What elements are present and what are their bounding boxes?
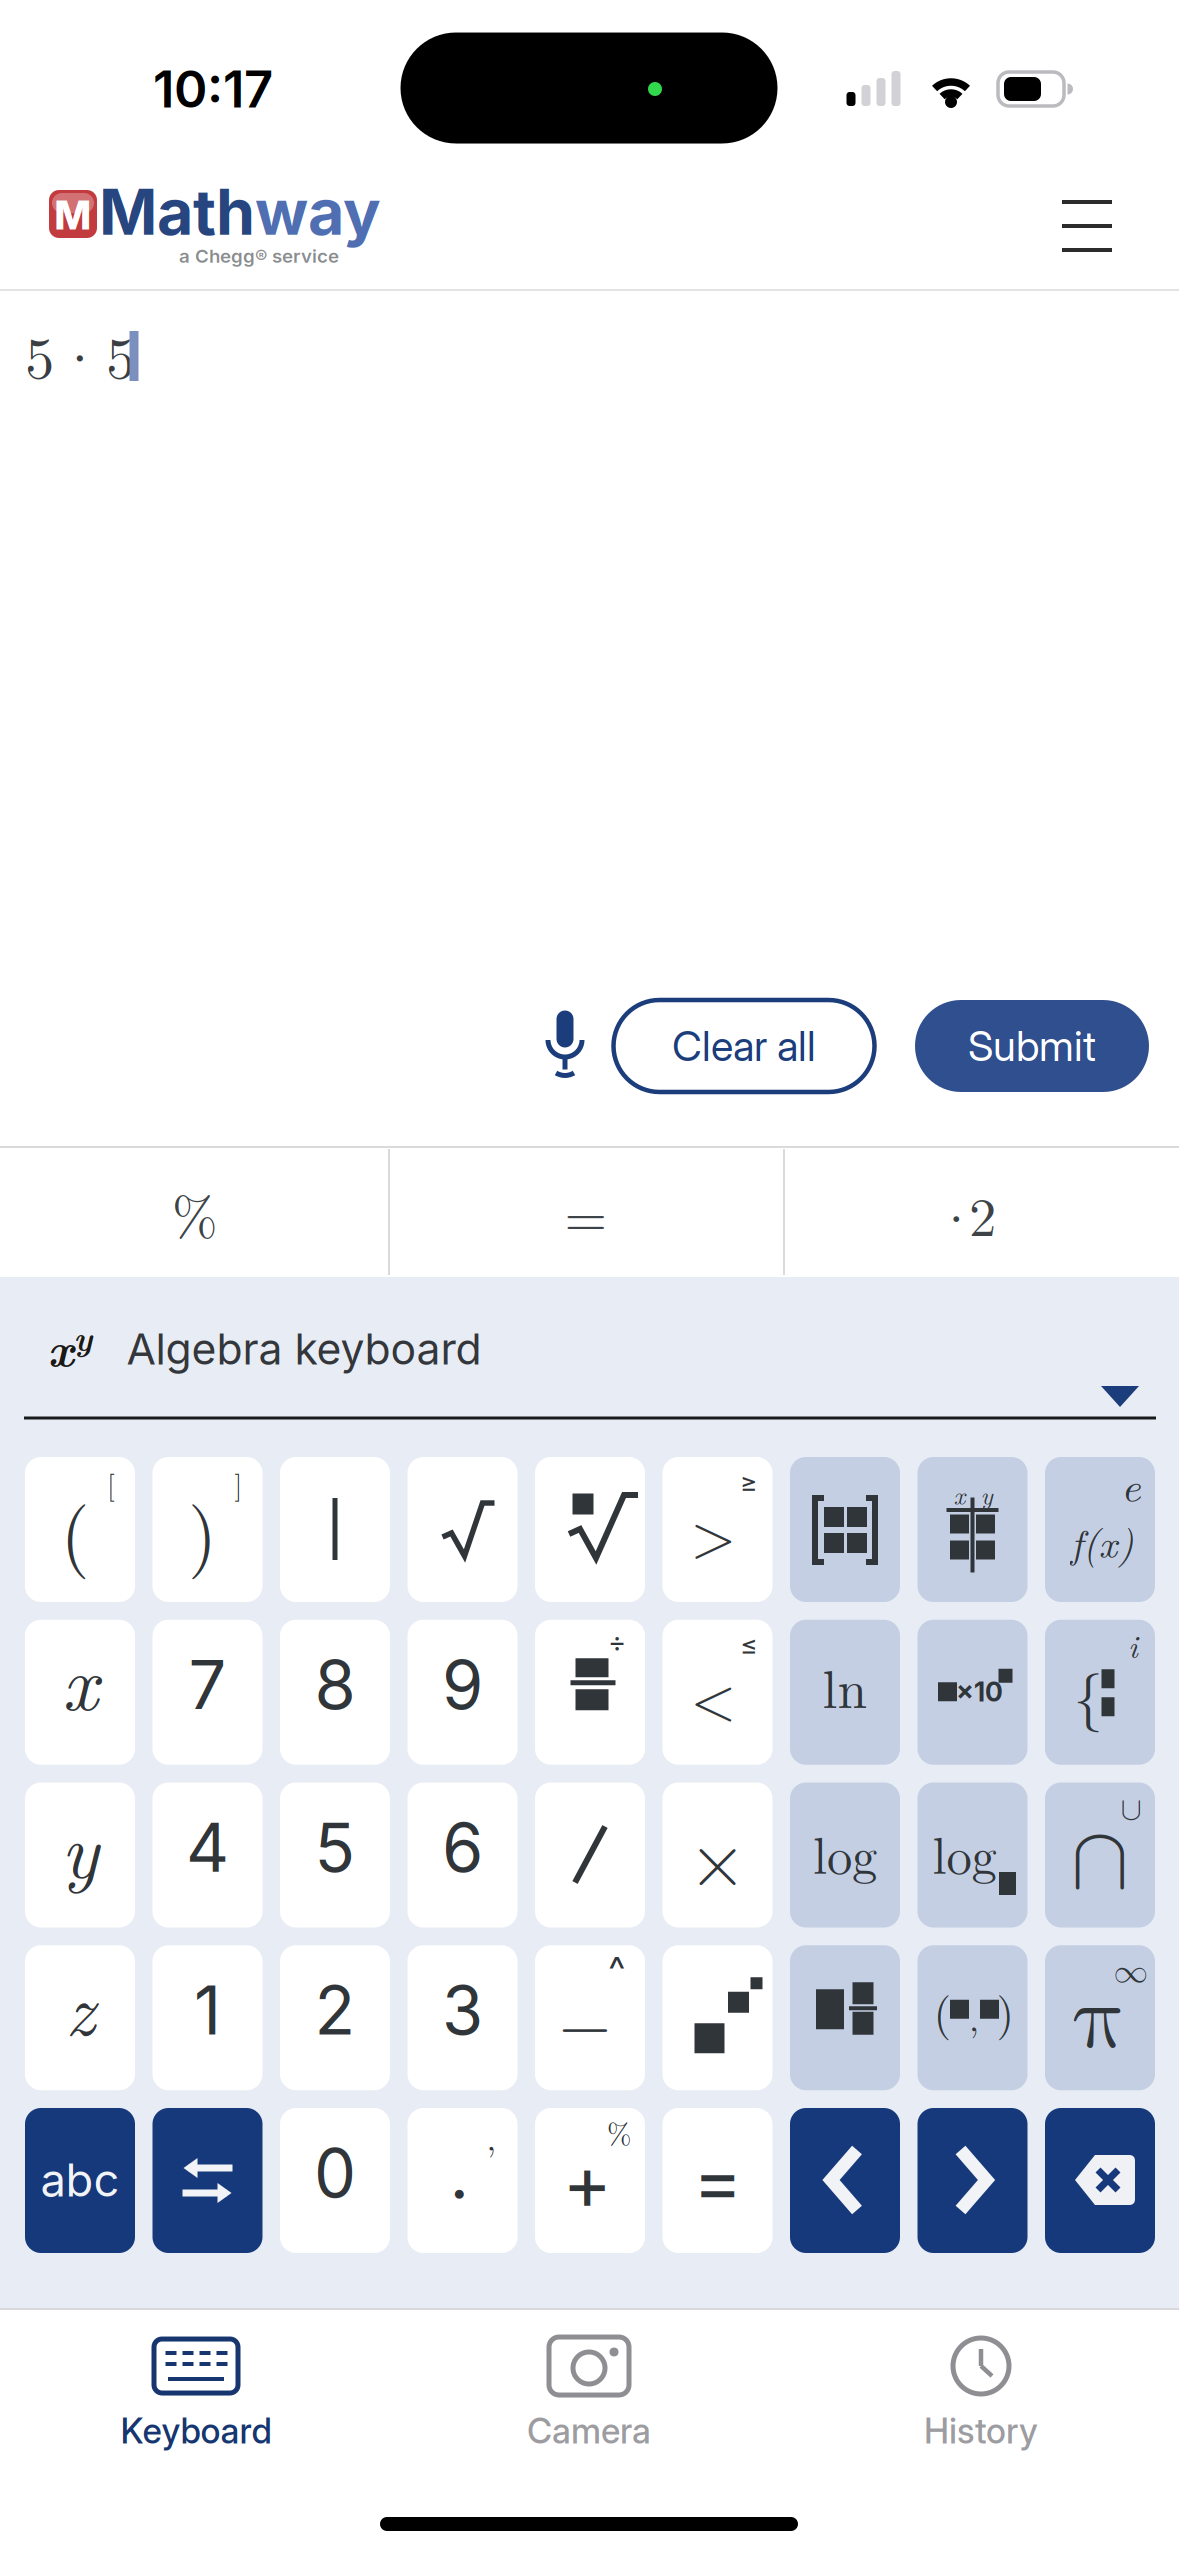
button[interactable]: 9 — [407, 1620, 517, 1765]
button[interactable]: Log base — [917, 1782, 1027, 1927]
staticText: 2 — [314, 1970, 355, 2051]
button[interactable]: Table — [917, 1457, 1027, 1602]
button[interactable]: Clear all — [613, 1000, 874, 1092]
button[interactable]: Mixed number — [790, 1945, 900, 2090]
button[interactable]: Piecewise — [1045, 1620, 1155, 1765]
button[interactable]: Nth root — [535, 1457, 645, 1602]
staticText: x — [62, 1623, 98, 1732]
staticText: + — [562, 2137, 611, 2227]
staticText: 10:17 — [153, 58, 273, 120]
staticText: . — [449, 2133, 469, 2215]
staticText: way — [255, 174, 381, 250]
button[interactable]: y — [25, 1782, 135, 1927]
button[interactable]: 5 — [280, 1782, 390, 1927]
button[interactable]: 8 — [280, 1620, 390, 1765]
staticText: , — [486, 2111, 496, 2160]
button[interactable]: Exponent — [662, 1945, 772, 2090]
button[interactable]: 3 — [407, 1945, 517, 2090]
staticText: Submit — [968, 1021, 1096, 1071]
staticText: 6 — [442, 1807, 483, 1888]
staticText: · — [935, 1176, 978, 1254]
staticText: % — [172, 1174, 218, 1252]
staticText: e — [1121, 1454, 1141, 1514]
button[interactable]: Pi — [1045, 1945, 1155, 2090]
button[interactable]: Dictate — [543, 1009, 587, 1079]
button[interactable]: Intersection — [1045, 1782, 1155, 1927]
button[interactable]: 0 — [280, 2108, 390, 2253]
button[interactable]: log — [790, 1782, 900, 1927]
button[interactable]: abc — [25, 2108, 135, 2253]
staticText: 9 — [442, 1644, 483, 1725]
button[interactable]: ( — [25, 1457, 135, 1602]
button[interactable]: Move left — [790, 2108, 900, 2253]
button[interactable]: Point — [917, 1945, 1027, 2090]
button[interactable]: Divide — [535, 1782, 645, 1927]
button[interactable]: 1 — [152, 1945, 262, 2090]
staticText: ∞ — [1113, 1955, 1148, 1990]
button[interactable]: Algebra keyboard — [0, 1277, 1179, 1419]
staticText: ) — [996, 1978, 1014, 2042]
staticText: 2 — [969, 1174, 996, 1252]
button[interactable]: Move right — [917, 2108, 1027, 2253]
button[interactable]: Absolute value — [280, 1457, 390, 1602]
staticText: ∪ — [1120, 1794, 1141, 1826]
button[interactable]: > — [662, 1457, 772, 1602]
staticText: y — [980, 1476, 992, 1512]
staticText: 5 — [314, 1807, 355, 1888]
staticText: Clear all — [672, 1021, 816, 1071]
button[interactable]: Menu — [1062, 200, 1112, 252]
staticText: ( — [60, 1476, 89, 1582]
staticText: { — [1073, 1651, 1102, 1734]
staticText: = — [693, 2135, 742, 2225]
staticText: x — [953, 1476, 965, 1512]
staticText: ÷ — [608, 1625, 626, 1659]
staticText: ^ — [608, 1948, 625, 1993]
button[interactable]: 4 — [152, 1782, 262, 1927]
staticText: y — [61, 1791, 99, 1900]
staticText: History — [924, 2410, 1038, 2452]
button[interactable]: < — [662, 1620, 772, 1765]
button[interactable]: Square root — [407, 1457, 517, 1602]
button[interactable]: 7 — [152, 1620, 262, 1765]
staticText: f(x) — [1070, 1513, 1133, 1569]
staticText: Math — [99, 174, 255, 250]
staticText: ( — [933, 1978, 951, 2042]
staticText: Camera — [527, 2410, 651, 2452]
staticText: ×10 — [956, 1676, 1003, 1708]
button[interactable]: . — [407, 2108, 517, 2253]
staticText: ] — [234, 1463, 242, 1503]
staticText: 4 — [186, 1807, 229, 1888]
button[interactable]: − — [535, 1945, 645, 2090]
button[interactable]: ln — [790, 1620, 900, 1765]
button[interactable]: z — [25, 1945, 135, 2090]
button[interactable]: ) — [152, 1457, 262, 1602]
staticText: Keyboard — [120, 2410, 271, 2452]
button[interactable]: = — [662, 2108, 772, 2253]
staticText: % — [607, 2111, 631, 2153]
button[interactable]: × — [662, 1782, 772, 1927]
button[interactable]: Scientific notation — [917, 1620, 1027, 1765]
button[interactable]: · — [784, 1149, 1177, 1277]
staticText: 7 — [188, 1644, 226, 1725]
button[interactable]: + — [535, 2108, 645, 2253]
button[interactable]: = — [390, 1149, 782, 1277]
staticText: abc — [40, 2153, 119, 2207]
button[interactable]: History — [851, 2330, 1111, 2480]
staticText: ∩ — [1070, 1816, 1129, 1904]
staticText: [ — [107, 1463, 115, 1503]
button[interactable]: Functions — [1045, 1457, 1155, 1602]
button[interactable]: 2 — [280, 1945, 390, 2090]
button[interactable]: Camera — [459, 2330, 719, 2480]
staticText: < — [690, 1653, 736, 1736]
staticText: Algebra keyboard — [126, 1323, 481, 1375]
button[interactable]: % — [1, 1149, 389, 1277]
button[interactable]: Fraction — [535, 1620, 645, 1765]
button[interactable]: x — [25, 1620, 135, 1765]
button[interactable]: Delete — [1045, 2108, 1155, 2253]
button[interactable]: 6 — [407, 1782, 517, 1927]
button[interactable]: Matrix — [790, 1457, 900, 1602]
button[interactable]: Swap — [152, 2108, 262, 2253]
button[interactable]: Keyboard — [66, 2330, 326, 2480]
staticText: a Chegg® service — [179, 245, 339, 267]
button[interactable]: Submit — [915, 1000, 1149, 1092]
